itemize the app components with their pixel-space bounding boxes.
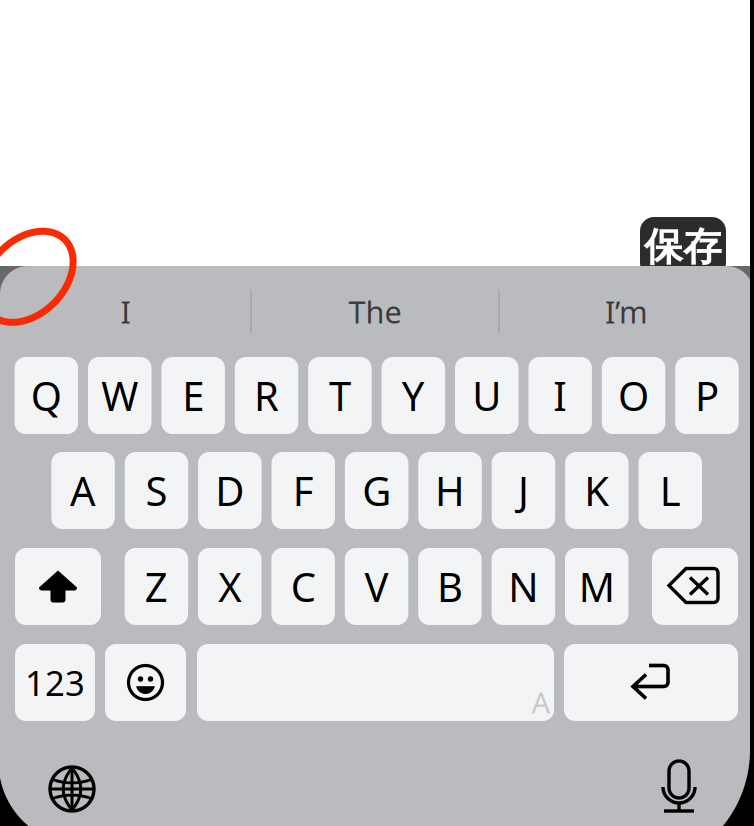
button[interactable]: Z xyxy=(125,548,188,625)
button[interactable]: X xyxy=(198,548,261,625)
staticText: Y xyxy=(402,369,425,422)
staticText: N xyxy=(508,560,538,613)
staticText: A xyxy=(70,464,96,517)
staticText: Q xyxy=(31,369,62,422)
staticText: B xyxy=(437,560,463,613)
button[interactable]: Dictation xyxy=(656,760,702,814)
button[interactable]: N xyxy=(492,548,555,625)
staticText: T xyxy=(329,369,351,422)
button[interactable]: I xyxy=(0,266,251,357)
staticText: D xyxy=(215,464,244,517)
staticText: L xyxy=(660,464,681,517)
button[interactable]: Y xyxy=(382,357,445,434)
button[interactable]: O xyxy=(602,357,665,434)
staticText: W xyxy=(101,369,138,422)
button[interactable]: P xyxy=(675,357,739,434)
button[interactable]: I xyxy=(528,357,592,434)
button[interactable]: 保存 xyxy=(640,217,726,277)
button[interactable]: Emoji xyxy=(105,644,186,721)
button[interactable]: Q xyxy=(15,357,78,434)
staticText: G xyxy=(362,464,391,517)
staticText: A xyxy=(531,682,550,721)
staticText: 123 xyxy=(25,659,85,705)
staticText: R xyxy=(254,369,279,422)
button[interactable]: R xyxy=(235,357,298,434)
button[interactable]: E xyxy=(161,357,225,434)
button[interactable]: B xyxy=(418,548,482,625)
button[interactable]: C xyxy=(271,548,335,625)
staticText: M xyxy=(579,560,615,613)
button[interactable]: M xyxy=(565,548,628,625)
button[interactable]: T xyxy=(308,357,372,434)
button[interactable]: K xyxy=(565,452,629,529)
button[interactable]: 123 xyxy=(15,644,95,721)
button[interactable]: Delete xyxy=(652,548,738,625)
button[interactable]: L xyxy=(638,452,702,529)
button[interactable]: F xyxy=(271,452,335,529)
button[interactable]: J xyxy=(492,452,555,529)
staticText: 保存 xyxy=(644,223,722,271)
staticText: I xyxy=(553,369,567,422)
button[interactable]: S xyxy=(125,452,188,529)
button[interactable]: V xyxy=(345,548,408,625)
staticText: U xyxy=(472,369,501,422)
button[interactable]: Shift xyxy=(15,548,101,625)
staticText: X xyxy=(218,560,241,613)
staticText: I xyxy=(120,291,130,332)
staticText: P xyxy=(695,369,719,422)
button[interactable]: Space xyxy=(197,644,554,721)
staticText: K xyxy=(584,464,609,517)
button[interactable]: U xyxy=(455,357,518,434)
staticText: Z xyxy=(145,560,168,613)
staticText: F xyxy=(293,464,314,517)
staticText: C xyxy=(291,560,316,613)
button[interactable]: A xyxy=(51,452,115,529)
staticText: S xyxy=(145,464,167,517)
button[interactable]: Next keyboard xyxy=(50,767,94,811)
button[interactable]: G xyxy=(345,452,408,529)
staticText: H xyxy=(435,464,465,517)
staticText: E xyxy=(182,369,204,422)
button[interactable]: D xyxy=(198,452,262,529)
button[interactable]: H xyxy=(418,452,482,529)
button[interactable]: I’m xyxy=(499,266,754,357)
button[interactable]: The xyxy=(251,266,499,357)
staticText: I’m xyxy=(605,291,648,332)
staticText: The xyxy=(348,291,401,332)
button[interactable]: W xyxy=(88,357,151,434)
button[interactable]: Return xyxy=(564,644,738,721)
staticText: O xyxy=(618,369,649,422)
staticText: J xyxy=(518,464,529,517)
staticText: V xyxy=(365,560,389,613)
